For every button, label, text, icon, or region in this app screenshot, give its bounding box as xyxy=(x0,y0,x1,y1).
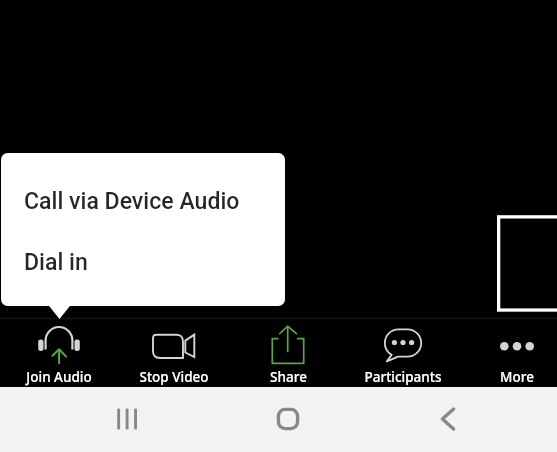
button[interactable]: More xyxy=(461,319,557,387)
button[interactable]: Join Audio xyxy=(3,319,115,387)
staticText: Dial in xyxy=(24,249,88,276)
button[interactable]: Share xyxy=(232,319,344,387)
button[interactable]: Back xyxy=(424,395,472,443)
staticText: Participants xyxy=(364,368,442,386)
button[interactable]: Participants xyxy=(347,319,459,387)
button[interactable]: Dial in xyxy=(1,232,285,293)
staticText: Call via Device Audio xyxy=(24,188,240,215)
button[interactable]: Stop Video xyxy=(118,319,230,387)
button[interactable]: Recents xyxy=(103,395,151,443)
staticText: Share xyxy=(270,368,307,386)
button[interactable]: Call via Device Audio xyxy=(1,171,285,232)
staticText: Join Audio xyxy=(26,368,92,386)
staticText: Stop Video xyxy=(139,368,209,386)
button[interactable]: Home xyxy=(264,395,312,443)
staticText: More xyxy=(500,368,534,386)
